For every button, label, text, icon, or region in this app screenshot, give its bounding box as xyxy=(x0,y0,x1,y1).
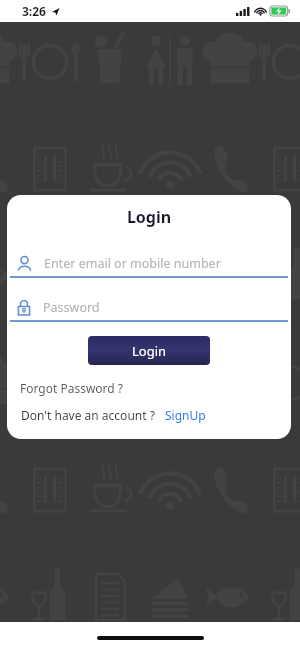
button[interactable]: Login xyxy=(88,336,210,365)
staticText: Password xyxy=(43,299,100,316)
button[interactable]: Forgot Password ? xyxy=(20,380,291,396)
staticText: 3:26 xyxy=(22,3,46,19)
staticText: Don't have an account ? xyxy=(21,407,155,423)
staticText: Login xyxy=(132,342,167,360)
staticText: Login xyxy=(7,206,291,228)
staticText: SignUp xyxy=(165,407,206,423)
button[interactable]: SignUp xyxy=(165,407,206,423)
staticText: Enter email or mobile number xyxy=(44,255,221,272)
staticText: Forgot Password ? xyxy=(20,380,124,396)
